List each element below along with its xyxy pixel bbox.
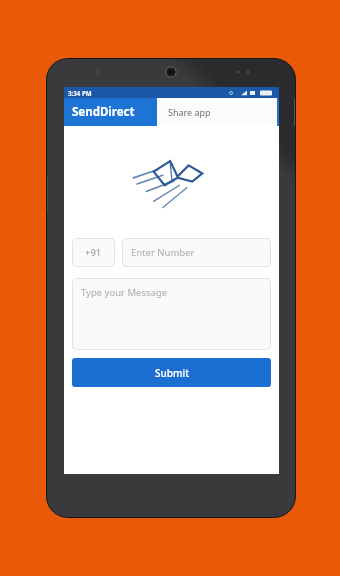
other: SendDirect logo: [126, 153, 218, 215]
button[interactable]: Type your Message: [72, 278, 271, 350]
button[interactable]: Share app: [157, 98, 277, 125]
staticText: 3:34 PM: [68, 89, 92, 97]
button[interactable]: SendDirect: [72, 104, 135, 120]
staticText: +91: [85, 246, 102, 259]
staticText: Type your Message: [81, 286, 168, 299]
button[interactable]: +91: [72, 238, 115, 267]
staticText: Enter Number: [131, 246, 195, 259]
staticText: SendDirect: [72, 104, 135, 120]
button[interactable]: Submit: [72, 358, 271, 387]
button[interactable]: Enter Number: [122, 238, 271, 267]
staticText: Share app: [168, 106, 211, 118]
staticText: Submit: [155, 366, 189, 380]
